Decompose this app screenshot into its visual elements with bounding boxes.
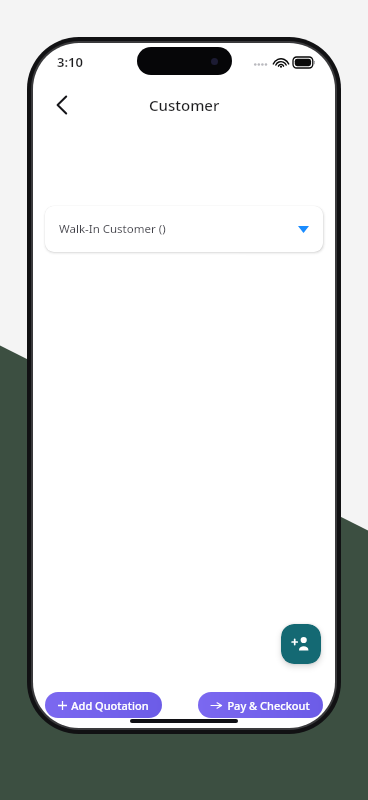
staticText: Walk-In Customer (): [59, 221, 166, 237]
button[interactable]: Back: [41, 84, 83, 126]
staticText: Add Quotation: [71, 698, 149, 713]
staticText: Pay & Checkout: [227, 698, 310, 713]
button[interactable]: Walk-In Customer (): [45, 206, 323, 252]
staticText: 3:10: [57, 53, 83, 71]
button[interactable]: Pay & Checkout: [198, 692, 323, 718]
staticText: Customer: [149, 95, 220, 115]
button[interactable]: Add Quotation: [45, 692, 162, 718]
button[interactable]: Add customer: [281, 624, 321, 664]
